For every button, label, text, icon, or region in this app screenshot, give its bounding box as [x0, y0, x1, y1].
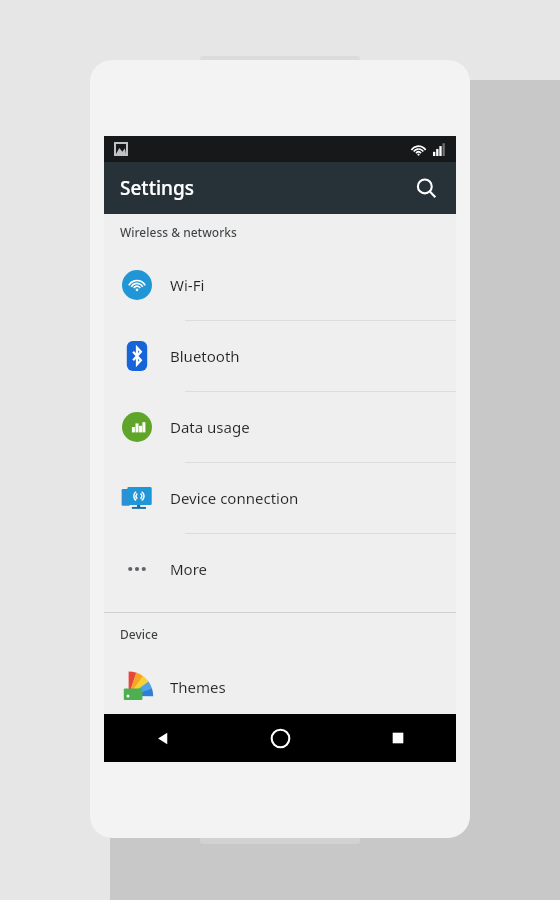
button[interactable]: Home [222, 714, 339, 762]
staticText: Device [120, 626, 158, 642]
button[interactable]: Device connection [104, 463, 456, 534]
button[interactable]: Wi-Fi [104, 250, 456, 321]
button[interactable]: Bluetooth [104, 321, 456, 392]
staticText: Wi-Fi [170, 275, 205, 295]
staticText: Settings [120, 175, 194, 201]
staticText: More [170, 559, 208, 579]
button[interactable]: Data usage [104, 392, 456, 463]
staticText: Data usage [170, 417, 250, 437]
button[interactable]: Recent apps [339, 714, 456, 762]
staticText: Bluetooth [170, 346, 240, 366]
staticText: Wireless & networks [120, 224, 237, 240]
button[interactable]: More [104, 534, 456, 604]
button[interactable]: Search [406, 168, 446, 208]
button[interactable]: Themes [104, 652, 456, 722]
staticText: Themes [170, 677, 226, 697]
button[interactable]: Back [104, 714, 222, 762]
staticText: Device connection [170, 488, 299, 508]
